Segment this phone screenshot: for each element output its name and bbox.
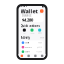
staticText: 9:41 xyxy=(20,4,27,8)
button[interactable]: Salary xyxy=(20,49,43,54)
staticText: Activity xyxy=(20,36,29,39)
button[interactable]: Pay xyxy=(20,29,28,34)
staticText: Salary xyxy=(25,51,30,53)
staticText: • xyxy=(28,57,29,59)
staticText: Grocery xyxy=(25,46,32,48)
staticText: • xyxy=(42,57,43,59)
button[interactable]: Grocery xyxy=(20,45,43,49)
staticText: ▮▮ xyxy=(41,5,43,8)
staticText: +$2,400 xyxy=(36,51,42,53)
staticText: Quick actions xyxy=(20,24,39,28)
button[interactable]: Home xyxy=(18,54,25,60)
button[interactable]: Tab xyxy=(39,54,46,60)
staticText: Wallet xyxy=(20,7,37,15)
button[interactable]: Spotify xyxy=(20,40,43,45)
staticText: See all xyxy=(39,37,43,39)
staticText: Pay xyxy=(23,32,26,34)
staticText: Spotify xyxy=(25,42,29,44)
staticText: -$9.99 xyxy=(38,42,42,44)
button[interactable]: Send xyxy=(36,29,43,34)
staticText: $4,280 xyxy=(22,17,33,22)
button[interactable]: Tab xyxy=(25,54,32,60)
staticText: -$42.10 xyxy=(37,46,42,48)
staticText: • xyxy=(35,57,36,59)
button[interactable]: Profile xyxy=(40,9,43,13)
button[interactable]: Tab xyxy=(32,54,39,60)
button[interactable]: Top up xyxy=(28,29,36,34)
staticText: Balance xyxy=(22,14,32,17)
staticText: • xyxy=(21,57,22,59)
staticText: Top up xyxy=(29,32,34,34)
